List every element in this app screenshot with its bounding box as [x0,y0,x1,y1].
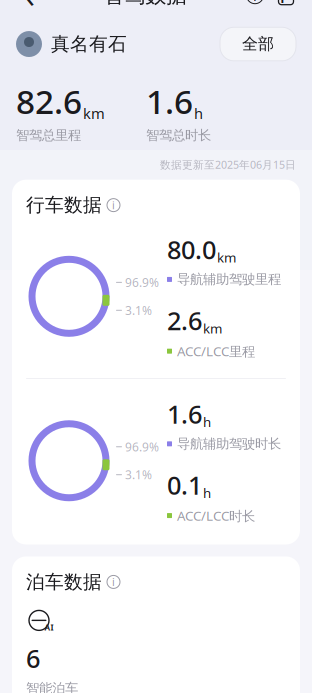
staticText: 导航辅助驾驶时长 [177,436,281,452]
staticText: 全部 [242,34,274,54]
staticText: 智驾总时长 [146,127,211,143]
staticText: 96.9% [125,274,159,290]
staticText: 智驾总里程 [16,127,81,143]
staticText: 80.0 [167,233,216,266]
staticText: ACC/LCC时长 [177,507,255,524]
staticText: 96.9% [125,439,159,455]
button[interactable]: 分享 [270,0,302,15]
staticText: km [83,104,105,123]
staticText: 0.1 [167,468,202,502]
staticText: i [112,198,115,212]
staticText: 6 [26,641,40,675]
button[interactable]: 说明 [240,0,270,15]
staticText: km [203,320,222,337]
button[interactable]: 全部 [220,27,296,61]
staticText: i [112,575,115,589]
staticText: h [203,413,211,431]
staticText: 1.6 [167,397,202,431]
staticText: h [203,484,211,502]
staticText: ‹ [25,0,35,16]
staticText: 真名有石 [51,33,127,55]
staticText: i [253,0,257,5]
staticText: km [217,248,236,266]
staticText: 智能泊车 [26,680,78,693]
staticText: ACC/LCC里程 [177,342,255,360]
staticText: 智驾数据 [103,0,187,8]
staticText: 82.6 [16,79,82,123]
staticText: 3.1% [125,467,152,483]
staticText: ↱ [276,0,295,8]
staticText: 数据更新至2025年06月15日 [160,157,296,172]
staticText: 泊车数据 [26,570,102,593]
staticText: 3.1% [125,302,152,318]
staticText: AI [44,622,53,633]
staticText: 行车数据 [26,194,102,217]
staticText: 2.6 [167,304,202,337]
button[interactable]: 返回 [10,0,50,15]
staticText: 导航辅助驾驶里程 [177,271,281,288]
staticText: h [194,104,203,123]
staticText: 1.6 [146,79,193,123]
